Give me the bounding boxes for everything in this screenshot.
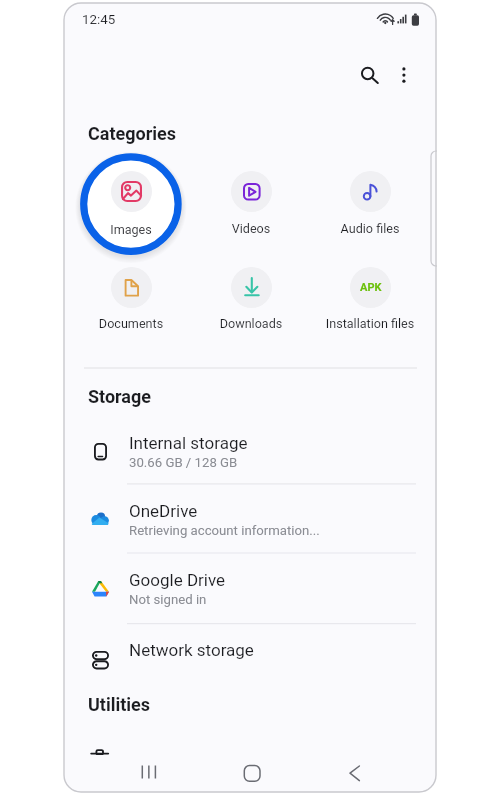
button[interactable]: Downloads [195, 262, 307, 332]
button[interactable]: Home [229, 755, 281, 792]
staticText: Audio files [314, 221, 426, 236]
staticText: Categories [88, 123, 177, 144]
staticText: Network storage [129, 640, 254, 660]
button[interactable]: Analyse storage [64, 747, 436, 755]
staticText: Installation files [314, 316, 426, 331]
staticText: Retrieving account information... [129, 523, 320, 538]
staticText: Storage [88, 386, 152, 407]
staticText: 30.66 GB / 128 GB [129, 455, 238, 470]
button[interactable]: Google Drive [64, 553, 436, 624]
button[interactable]: Search [351, 53, 387, 89]
button[interactable]: Network storage [64, 624, 436, 694]
button[interactable]: APK [314, 262, 426, 332]
button[interactable]: Audio files [314, 166, 426, 236]
button[interactable]: Videos [195, 166, 307, 236]
staticText: 12:45 [82, 12, 116, 28]
staticText: Downloads [195, 316, 307, 331]
button[interactable]: OneDrive [64, 484, 436, 553]
button[interactable]: Internal storage [64, 418, 436, 484]
staticText: Documents [75, 316, 187, 331]
staticText: APK [360, 281, 382, 294]
staticText: Utilities [88, 694, 151, 715]
button[interactable]: Documents [75, 262, 187, 332]
staticText: Internal storage [129, 433, 248, 453]
staticText: OneDrive [129, 501, 198, 521]
button[interactable]: Back [333, 755, 385, 792]
staticText: Videos [195, 221, 307, 236]
button[interactable]: Recents [125, 755, 177, 792]
staticText: Not signed in [129, 592, 207, 607]
staticText: Images [75, 222, 187, 237]
button[interactable]: More options [386, 53, 422, 89]
button[interactable]: Images [75, 166, 187, 236]
staticText: Google Drive [129, 570, 226, 590]
